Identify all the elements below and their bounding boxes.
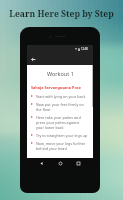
staticText: Start with lying on your back [36, 94, 86, 99]
staticText: Now put your feet firmly on the floor [36, 102, 87, 112]
staticText: Here take your palms and press your palm… [36, 115, 87, 130]
button[interactable]: Back [27, 53, 39, 65]
staticText: Sahaja Sarvangasana Pose [31, 85, 81, 90]
staticText: Workout 1 [47, 70, 74, 77]
staticText: Learn Here Step by Step [9, 8, 114, 20]
staticText: 12:30 [81, 47, 88, 51]
button[interactable]: Recent apps [74, 159, 83, 168]
staticText: Try to straighten your legs up [36, 133, 87, 138]
button[interactable]: Home [56, 159, 65, 168]
button[interactable]: Back [37, 159, 46, 168]
staticText: Now, move your legs further behind your … [36, 141, 87, 151]
